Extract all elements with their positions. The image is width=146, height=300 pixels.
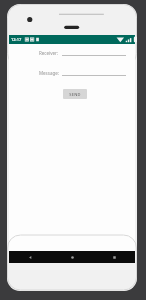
button[interactable]: SEND [63, 89, 87, 99]
staticText: Message: [39, 70, 59, 76]
staticText: 12:17 [11, 37, 22, 42]
button[interactable]: Message: [39, 70, 126, 76]
button[interactable]: Recent apps [93, 251, 135, 263]
button[interactable]: Receiver: [39, 50, 126, 56]
button[interactable]: Home [51, 251, 93, 263]
staticText: Receiver: [39, 50, 59, 56]
staticText: SEND [69, 92, 81, 97]
button[interactable]: Back [9, 251, 51, 263]
